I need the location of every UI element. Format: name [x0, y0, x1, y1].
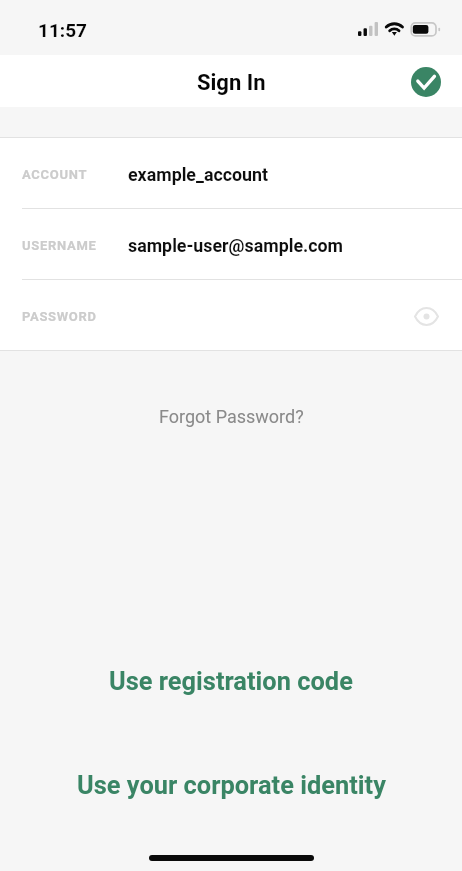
staticText: Forgot Password?: [159, 406, 304, 427]
staticText: USERNAME: [22, 238, 97, 253]
staticText: example_account: [128, 164, 269, 185]
staticText: 11:57: [38, 19, 87, 41]
button[interactable]: USERNAME: [0, 209, 462, 280]
button[interactable]: Use registration code: [0, 658, 462, 704]
button[interactable]: ACCOUNT: [0, 138, 462, 209]
staticText: Use registration code: [109, 666, 353, 696]
button[interactable]: Forgot Password?: [0, 394, 462, 438]
button[interactable]: PASSWORD: [0, 280, 462, 351]
button[interactable]: Confirm: [411, 67, 441, 97]
staticText: ACCOUNT: [22, 167, 88, 182]
staticText: Use your corporate identity: [77, 770, 386, 800]
button[interactable]: Use your corporate identity: [0, 762, 462, 808]
staticText: Sign In: [197, 70, 266, 96]
staticText: PASSWORD: [22, 309, 97, 324]
button[interactable]: Show password: [406, 296, 446, 336]
staticText: sample-user@sample.com: [128, 235, 343, 256]
